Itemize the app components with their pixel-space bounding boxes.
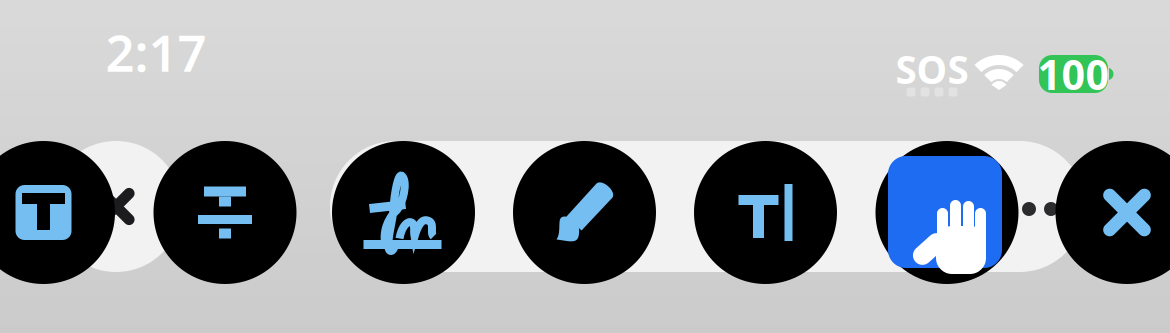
staticText: 2:17	[105, 18, 206, 86]
button[interactable]: Text box	[0, 141, 115, 284]
button[interactable]: AssistiveTouch	[888, 156, 1002, 268]
button[interactable]: Signature	[332, 141, 475, 284]
button[interactable]: Eraser	[875, 141, 1018, 284]
button[interactable]: Close toolbar	[1055, 141, 1170, 284]
button[interactable]: Add text	[694, 141, 837, 284]
button[interactable]: Close markup	[50, 141, 181, 272]
button[interactable]: Text align	[153, 141, 296, 284]
button[interactable]: Brush	[513, 141, 656, 284]
staticText: 100	[1037, 47, 1109, 101]
staticText: SOS	[895, 43, 968, 95]
